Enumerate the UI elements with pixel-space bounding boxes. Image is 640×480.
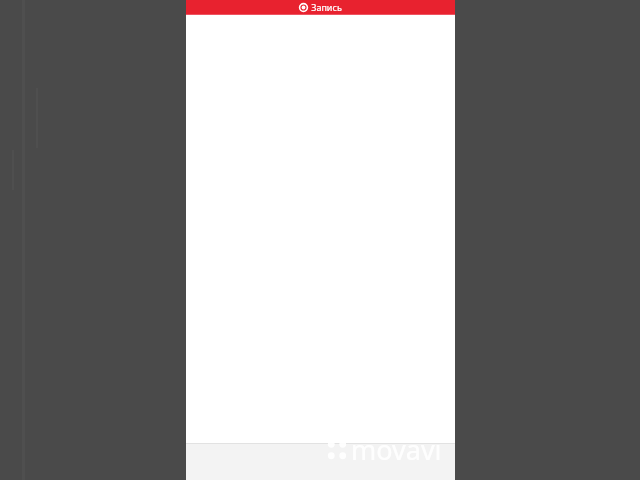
button[interactable]: Recording <box>186 0 455 14</box>
staticText: Запись <box>311 1 342 13</box>
staticText: movavi <box>351 431 442 468</box>
other: Recording <box>299 3 308 12</box>
